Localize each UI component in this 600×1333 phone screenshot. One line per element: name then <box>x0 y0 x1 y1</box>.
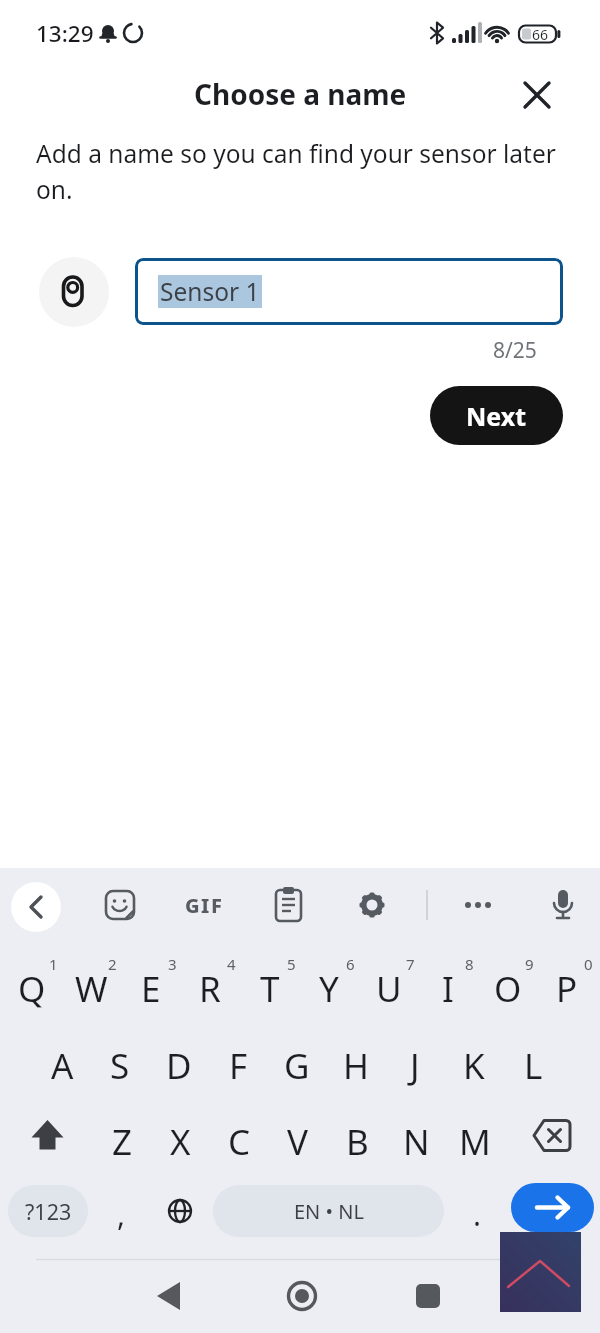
staticText: GIF <box>185 892 224 919</box>
staticText: 7 <box>406 954 415 974</box>
staticText: T <box>260 965 280 1013</box>
staticText: U <box>376 965 402 1013</box>
staticText: A <box>51 1042 74 1090</box>
staticText: ?123 <box>25 1197 72 1226</box>
staticText: I <box>442 965 454 1013</box>
staticText: 4 <box>227 954 236 974</box>
staticText: C <box>228 1118 251 1166</box>
staticText: 8 <box>465 954 474 974</box>
staticText: J <box>410 1042 420 1090</box>
staticText: , <box>117 1194 126 1234</box>
button[interactable]: Sensor 1 <box>135 258 563 325</box>
staticText: F <box>229 1042 248 1090</box>
staticText: 6 <box>346 954 355 974</box>
staticText: W <box>75 965 108 1013</box>
staticText: 3 <box>168 954 177 974</box>
staticText: M <box>459 1118 491 1166</box>
staticText: 5 <box>287 954 296 974</box>
staticText: O <box>494 965 522 1013</box>
button[interactable] <box>500 1232 581 1312</box>
staticText: S <box>110 1042 130 1090</box>
staticText: Q <box>18 965 46 1013</box>
staticText: H <box>343 1042 369 1090</box>
staticText: K <box>463 1042 485 1090</box>
button[interactable]: ?123 <box>8 1185 88 1237</box>
button[interactable] <box>515 73 559 117</box>
staticText: N <box>403 1118 430 1166</box>
staticText: D <box>166 1042 192 1090</box>
staticText: V <box>287 1118 309 1166</box>
button[interactable] <box>511 1183 594 1232</box>
staticText: 8/25 <box>493 336 537 362</box>
staticText: 2 <box>108 954 117 974</box>
staticText: Y <box>319 965 339 1013</box>
staticText: L <box>524 1042 543 1090</box>
staticText: EN • NL <box>294 1198 364 1225</box>
button[interactable]: EN • NL <box>213 1185 444 1237</box>
staticText: X <box>170 1118 191 1166</box>
button[interactable] <box>11 882 61 932</box>
staticText: Next <box>466 399 527 433</box>
staticText: G <box>284 1042 310 1090</box>
staticText: 9 <box>525 954 534 974</box>
staticText: Sensor 1 <box>160 275 260 308</box>
staticText: E <box>141 965 161 1013</box>
staticText: 1 <box>49 954 58 974</box>
staticText: 13:29 <box>36 18 94 49</box>
staticText: R <box>199 965 221 1013</box>
button[interactable]: Next <box>430 386 563 445</box>
staticText: Add a name so you can find your sensor l… <box>36 137 556 206</box>
staticText: B <box>346 1118 369 1166</box>
staticText: 66 <box>532 25 549 44</box>
staticText: Choose a name <box>194 75 407 113</box>
staticText: . <box>473 1194 482 1234</box>
staticText: Z <box>112 1118 133 1166</box>
staticText: P <box>556 965 578 1013</box>
staticText: 0 <box>584 954 593 974</box>
